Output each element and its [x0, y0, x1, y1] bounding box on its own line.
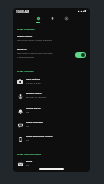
button[interactable]: Settings	[31, 15, 44, 25]
staticText: On	[26, 125, 30, 128]
button[interactable]: Email	[13, 157, 90, 171]
staticText: On	[26, 139, 30, 142]
staticText: Off	[26, 111, 30, 114]
staticText: 3 failed attempts	[17, 56, 35, 59]
staticText: Record sound	[26, 92, 42, 95]
staticText: Show message	[26, 121, 43, 124]
staticText: Take picture	[26, 78, 41, 81]
staticText: Take action after 3 failed attempts	[17, 39, 52, 42]
staticText: Email	[26, 160, 33, 163]
staticText: ALERT TRIGGERS	[17, 28, 35, 31]
button[interactable]: Break in toggle	[75, 52, 86, 58]
button[interactable]: Break in	[13, 48, 90, 64]
button[interactable]: Failed unlock	[13, 35, 90, 46]
button[interactable]: Take picture	[13, 75, 90, 89]
button[interactable]: Record sound	[13, 89, 90, 103]
staticText: 10:08 AM	[16, 10, 30, 14]
button[interactable]: Sound alarm	[13, 104, 90, 118]
button[interactable]: Protection	[46, 15, 59, 25]
staticText: ALERT ACTIONS	[17, 70, 34, 73]
button[interactable]: Show message	[13, 118, 90, 132]
button[interactable]: Show fake force screen	[13, 132, 90, 146]
staticText: Failed unlock	[17, 35, 33, 38]
staticText: ALERT NOTIFICATIONS	[17, 153, 42, 156]
staticText: Take action if device gets unlocked	[17, 52, 53, 55]
staticText: Records 15 seconds	[26, 96, 47, 99]
staticText: 2 front, 2 back	[26, 82, 41, 85]
staticText: Break in	[17, 48, 27, 51]
staticText: On	[26, 164, 30, 167]
staticText: Sound alarm	[26, 107, 41, 110]
button[interactable]: Account	[60, 15, 73, 25]
staticText: Show fake force screen	[26, 135, 53, 138]
